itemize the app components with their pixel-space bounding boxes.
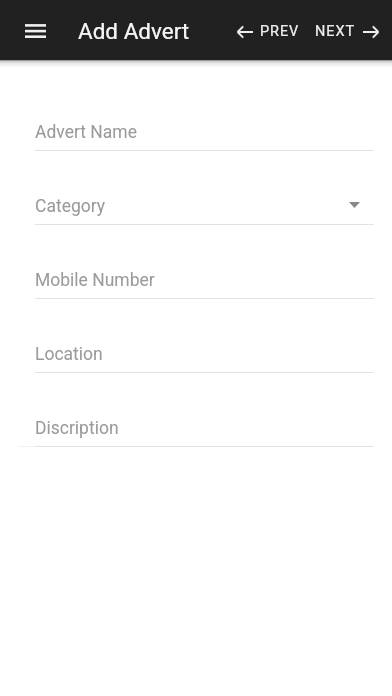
staticText: NEXT xyxy=(315,23,355,40)
button[interactable]: Category xyxy=(0,190,392,264)
staticText: Category xyxy=(35,196,106,217)
staticText: Location xyxy=(35,344,103,365)
staticText: PREV xyxy=(260,23,300,40)
button[interactable]: NEXT xyxy=(307,13,387,50)
button[interactable]: Advert Name xyxy=(0,116,392,190)
button[interactable]: Menu xyxy=(13,12,49,48)
button[interactable]: Discription xyxy=(0,412,392,486)
staticText: Add Advert xyxy=(78,18,190,44)
button[interactable]: Location xyxy=(0,338,392,412)
button[interactable]: Mobile Number xyxy=(0,264,392,338)
staticText: Advert Name xyxy=(35,122,137,143)
staticText: Discription xyxy=(35,418,119,439)
button[interactable]: PREV xyxy=(229,13,308,50)
staticText: Mobile Number xyxy=(35,270,155,291)
